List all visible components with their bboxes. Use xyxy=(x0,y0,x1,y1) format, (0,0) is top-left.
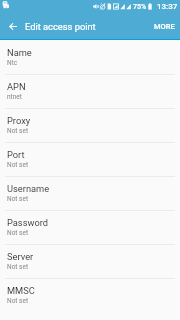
staticText: ntnet xyxy=(7,93,22,101)
staticText: Not set xyxy=(7,127,29,135)
staticText: Password xyxy=(7,217,49,228)
staticText: APN xyxy=(7,81,26,92)
button[interactable]: Navigate up xyxy=(0,12,24,40)
staticText: Edit access point xyxy=(25,21,96,32)
button[interactable]: Name xyxy=(0,40,180,74)
button[interactable]: Password xyxy=(0,210,180,244)
button[interactable]: MMSC xyxy=(0,278,180,312)
staticText: 13:37 xyxy=(157,2,178,11)
staticText: Proxy xyxy=(7,115,31,126)
staticText: MMSC xyxy=(7,285,35,296)
button[interactable]: Port xyxy=(0,142,180,176)
button[interactable]: Proxy xyxy=(0,108,180,142)
staticText: Not set xyxy=(7,195,29,203)
staticText: Not set xyxy=(7,161,29,169)
staticText: Server xyxy=(7,251,34,262)
button[interactable]: APN xyxy=(0,74,180,108)
staticText: Port xyxy=(7,149,25,160)
staticText: Not set xyxy=(7,297,29,305)
staticText: 75% xyxy=(133,3,147,11)
staticText: MORE xyxy=(154,22,175,31)
staticText: Name xyxy=(7,47,32,58)
staticText: Ntc xyxy=(7,59,18,67)
button[interactable]: Username xyxy=(0,176,180,210)
button[interactable]: Server xyxy=(0,244,180,278)
staticText: Username xyxy=(7,183,50,194)
staticText: Not set xyxy=(7,229,29,237)
staticText: Not set xyxy=(7,263,29,271)
button[interactable]: MORE xyxy=(149,12,180,40)
